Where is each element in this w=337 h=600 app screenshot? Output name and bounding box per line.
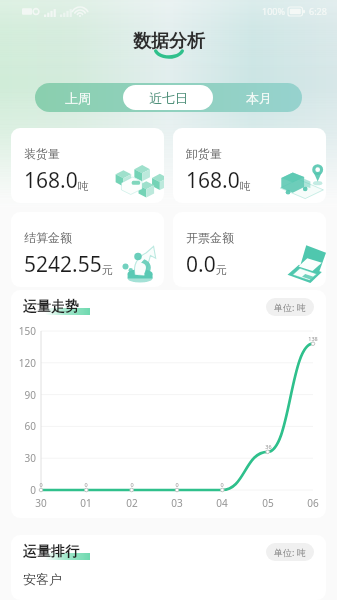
staticText: 168.0	[186, 166, 240, 195]
staticText: 6:28	[309, 5, 327, 17]
button[interactable]: 上周	[37, 85, 119, 110]
staticText: 60	[11, 419, 36, 433]
staticText: 0	[84, 481, 88, 488]
staticText: 05	[262, 496, 274, 510]
staticText: 安客户	[23, 571, 62, 587]
staticText: 03	[171, 496, 183, 510]
staticText: 06	[307, 496, 319, 510]
button[interactable]: 结算金额	[11, 212, 164, 287]
staticText: 元	[102, 263, 113, 277]
staticText: 30	[35, 496, 47, 510]
staticText: 吨	[78, 179, 89, 193]
staticText: 120	[11, 356, 36, 370]
staticText: 0	[175, 481, 179, 488]
button[interactable]: 近七日	[123, 85, 213, 110]
staticText: 36	[265, 443, 272, 450]
button[interactable]: 卸货量	[173, 128, 326, 203]
staticText: 168.0	[24, 166, 78, 195]
staticText: 0	[130, 481, 134, 488]
staticText: 30	[11, 451, 36, 465]
staticText: 卸货量	[186, 146, 222, 161]
staticText: 运量走势	[23, 298, 79, 316]
staticText: 5242.55	[24, 250, 102, 279]
staticText: 90	[11, 388, 36, 402]
staticText: 近七日	[149, 90, 188, 106]
staticText: 04	[216, 496, 228, 510]
staticText: 138	[308, 335, 318, 342]
staticText: 单位: 吨	[274, 546, 306, 558]
staticText: 02	[126, 496, 138, 510]
staticText: 装货量	[24, 146, 60, 161]
staticText: 上周	[65, 90, 91, 106]
staticText: 元	[216, 263, 227, 277]
staticText: 开票金额	[186, 230, 234, 245]
staticText: 0	[11, 483, 36, 497]
button[interactable]: 本月	[217, 85, 300, 110]
staticText: 100%	[262, 5, 285, 17]
staticText: 0	[39, 481, 43, 488]
button[interactable]: 开票金额	[173, 212, 326, 287]
staticText: 0.0	[186, 250, 216, 279]
staticText: 本月	[246, 90, 272, 106]
button[interactable]: 装货量	[11, 128, 164, 203]
staticText: 单位: 吨	[274, 301, 306, 313]
staticText: 吨	[240, 179, 251, 193]
staticText: 数据分析	[133, 30, 205, 53]
staticText: 0	[220, 481, 224, 488]
staticText: 运量排行	[23, 543, 79, 561]
staticText: 150	[11, 324, 36, 338]
staticText: 01	[80, 496, 92, 510]
staticText: 结算金额	[24, 230, 72, 245]
